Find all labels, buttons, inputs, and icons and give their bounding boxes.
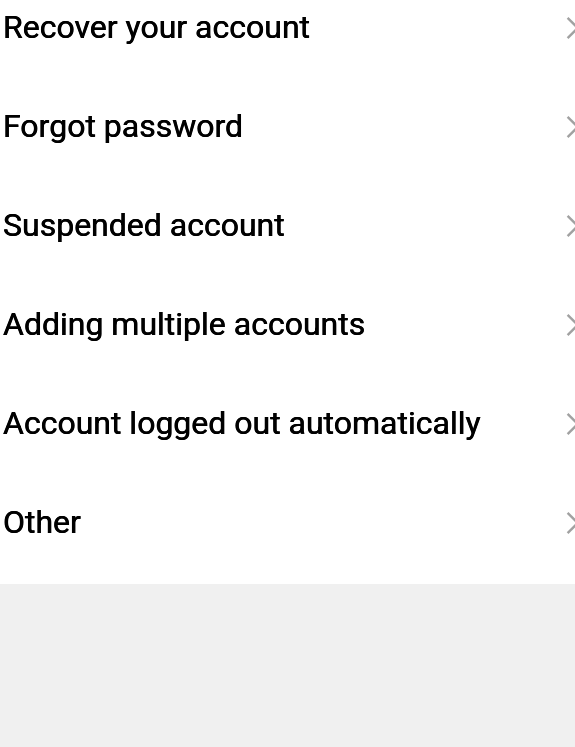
button[interactable]: Other — [0, 495, 575, 584]
other: Adding multiple accounts — [545, 310, 575, 340]
staticText: Other — [3, 503, 81, 541]
other: Suspended account — [545, 211, 575, 241]
other: Forgot password — [545, 112, 575, 142]
staticText: Adding multiple accounts — [3, 305, 366, 343]
other: Account logged out automatically — [545, 409, 575, 439]
staticText: Forgot password — [3, 107, 244, 145]
staticText: Account logged out automatically — [3, 404, 481, 442]
staticText: Suspended account — [3, 206, 285, 244]
staticText: Account logged out automatically — [3, 404, 481, 442]
staticText: Forgot password — [3, 107, 244, 145]
staticText: Recover your account — [3, 8, 311, 46]
staticText: Suspended account — [3, 206, 285, 244]
staticText: Suspended account — [3, 206, 285, 244]
staticText: Recover your account — [3, 8, 311, 46]
staticText: Suspended account — [3, 206, 285, 244]
staticText: Other — [3, 503, 81, 541]
button[interactable]: Suspended account — [0, 198, 575, 297]
other: Recover your account — [545, 13, 575, 43]
staticText: Recover your account — [3, 8, 311, 46]
staticText: Forgot password — [3, 107, 244, 145]
staticText: Adding multiple accounts — [3, 305, 366, 343]
staticText: Account logged out automatically — [3, 404, 481, 442]
staticText: Adding multiple accounts — [3, 305, 366, 343]
button[interactable]: Forgot password — [0, 99, 575, 198]
staticText: Other — [3, 503, 81, 541]
staticText: Other — [3, 503, 81, 541]
button[interactable]: Recover your account — [0, 0, 575, 99]
staticText: Account logged out automatically — [3, 404, 481, 442]
button[interactable]: Account logged out automatically — [0, 396, 575, 495]
button[interactable]: Adding multiple accounts — [0, 297, 575, 396]
staticText: Forgot password — [3, 107, 244, 145]
staticText: Recover your account — [3, 8, 311, 46]
other: Other — [545, 508, 575, 538]
staticText: Adding multiple accounts — [3, 305, 366, 343]
